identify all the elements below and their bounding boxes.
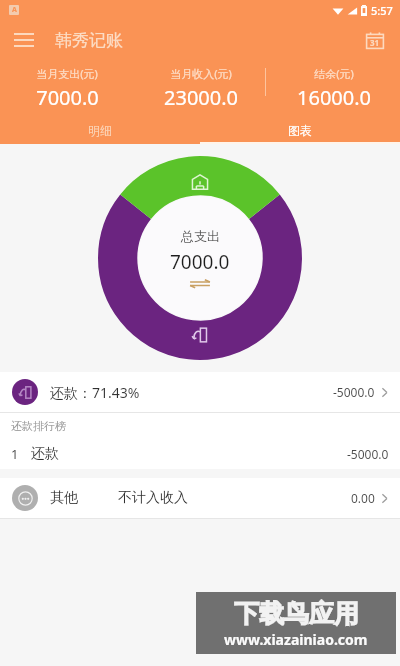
staticText: 还款排行榜 — [11, 419, 66, 433]
staticText: 0.00 — [351, 490, 375, 506]
button[interactable]: 还款：71.43% — [0, 372, 400, 412]
staticText: -5000.0 — [347, 446, 389, 462]
staticText: 当月支出(元) — [36, 66, 98, 81]
button[interactable]: 图表 — [200, 116, 400, 144]
staticText: 7000.0 — [36, 84, 99, 111]
staticText: 图表 — [288, 123, 312, 138]
staticText: 韩秀记账 — [55, 30, 123, 51]
staticText: 当月收入(元) — [170, 66, 232, 81]
staticText: 结余(元) — [314, 66, 354, 81]
staticText: www.xiazainiao.com — [224, 630, 368, 649]
staticText: 下载鸟应用 — [234, 598, 359, 629]
staticText: 5:57 — [371, 3, 393, 18]
button[interactable]: 明细 — [0, 116, 200, 144]
button[interactable]: Calendar — [358, 23, 392, 57]
staticText: 还款 — [31, 445, 59, 463]
staticText: A — [12, 5, 17, 15]
staticText: 明细 — [88, 123, 112, 138]
staticText: 总支出 — [181, 228, 220, 244]
staticText: 23000.0 — [164, 84, 238, 111]
staticText: 还款：71.43% — [50, 383, 140, 402]
staticText: 31 — [370, 37, 380, 48]
staticText: 1 — [11, 445, 19, 463]
staticText: 16000.0 — [297, 84, 371, 111]
staticText: 7000.0 — [170, 249, 230, 275]
staticText: -5000.0 — [333, 384, 375, 400]
button[interactable]: 1 — [0, 439, 400, 469]
staticText: 不计入收入 — [118, 489, 188, 507]
button[interactable]: 其他 — [0, 478, 400, 518]
staticText: 其他 — [50, 489, 78, 507]
button[interactable]: Menu — [6, 22, 42, 58]
